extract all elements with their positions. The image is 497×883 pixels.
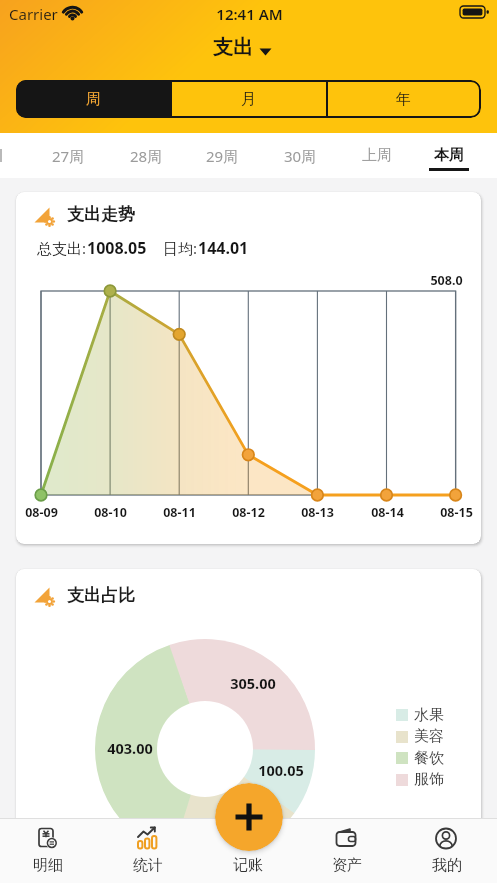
button[interactable]: 记账 xyxy=(208,818,288,883)
staticText: 08-14 xyxy=(371,504,404,521)
button[interactable]: 明细 xyxy=(8,818,88,883)
staticText: 总支出: xyxy=(37,238,87,258)
staticText: 上周 xyxy=(362,146,392,165)
staticText: 月 xyxy=(241,90,256,109)
staticText: 明细 xyxy=(33,856,63,875)
button[interactable]: 月 xyxy=(171,80,326,118)
staticText: 服饰 xyxy=(414,770,444,789)
staticText: 100.05 xyxy=(258,760,304,780)
staticText: 144.01 xyxy=(198,237,249,259)
button[interactable]: 上周 xyxy=(341,133,413,178)
button[interactable]: 28周 xyxy=(110,133,182,178)
button[interactable]: 27周 xyxy=(32,133,104,178)
button[interactable]: 统计 xyxy=(108,818,188,883)
button[interactable]: 支出 xyxy=(205,36,291,66)
staticText: 08-12 xyxy=(232,504,265,521)
staticText: 餐饮 xyxy=(414,749,444,768)
staticText: 29周 xyxy=(206,146,239,166)
staticText: 日均: xyxy=(163,238,198,258)
staticText: Carrier xyxy=(9,4,58,24)
staticText: 08-13 xyxy=(301,504,334,521)
button[interactable]: 我的 xyxy=(407,818,487,883)
button[interactable]: 年 xyxy=(326,80,481,118)
staticText: 支出走势 xyxy=(67,204,135,225)
button[interactable]: 本周 xyxy=(413,133,485,178)
staticText: 水果 xyxy=(414,706,444,725)
staticText: 支出占比 xyxy=(67,585,135,606)
staticText: 资产 xyxy=(332,856,362,875)
staticText: 508.0 xyxy=(430,272,463,289)
staticText: 305.00 xyxy=(230,673,276,693)
staticText: 08-09 xyxy=(25,504,58,521)
staticText: 1008.05 xyxy=(87,237,147,259)
staticText: 年 xyxy=(396,90,411,109)
button[interactable]: 29周 xyxy=(186,133,258,178)
staticText: 支出 xyxy=(213,35,253,60)
staticText: 统计 xyxy=(133,856,163,875)
staticText: 30周 xyxy=(284,146,317,166)
staticText: 08-10 xyxy=(94,504,127,521)
staticText: 08-11 xyxy=(163,504,196,521)
staticText: 28周 xyxy=(130,146,163,166)
staticText: 周 xyxy=(86,90,101,109)
staticText: 本周 xyxy=(434,146,464,165)
staticText: 403.00 xyxy=(107,738,153,758)
staticText: 08-15 xyxy=(440,504,473,521)
button[interactable]: 周 xyxy=(16,80,171,118)
button[interactable]: 资产 xyxy=(307,818,387,883)
staticText: 27周 xyxy=(52,146,85,166)
staticText: 记账 xyxy=(233,856,263,875)
staticText: 我的 xyxy=(432,856,462,875)
staticText: 美容 xyxy=(414,727,444,746)
staticText: 12:41 AM xyxy=(216,4,283,24)
button[interactable]: 30周 xyxy=(264,133,336,178)
button[interactable] xyxy=(215,783,283,851)
